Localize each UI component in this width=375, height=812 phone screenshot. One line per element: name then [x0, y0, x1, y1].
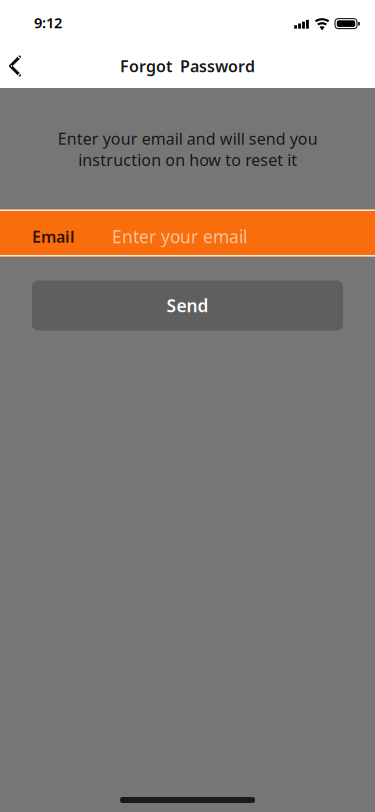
button[interactable]: Email	[0, 209, 375, 256]
staticText: Enter your email	[112, 225, 247, 248]
staticText: Email	[32, 226, 75, 247]
button[interactable]: Send	[0, 280, 375, 330]
staticText: Enter your email and will send you instr…	[57, 128, 317, 170]
staticText: Forgot Password	[120, 55, 255, 77]
staticText: Send	[166, 294, 208, 317]
staticText: 9:12	[34, 13, 62, 32]
button[interactable]: Back	[0, 44, 30, 88]
